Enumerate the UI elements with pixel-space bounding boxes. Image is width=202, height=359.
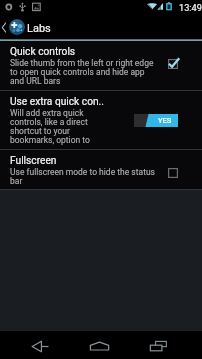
button[interactable]: Quick controls [0, 41, 202, 90]
button[interactable]: Unchecked [164, 165, 182, 181]
button[interactable]: Fullscreen [0, 150, 202, 189]
staticText: Use fullscreen mode to hide the status b… [10, 167, 160, 187]
button[interactable]: Home [70, 331, 128, 359]
staticText: Use extra quick con.. [10, 96, 104, 108]
button[interactable]: Back [11, 331, 69, 359]
staticText: Quick controls [10, 46, 76, 58]
staticText: Slide thumb from the left or right edge … [10, 58, 160, 87]
button[interactable]: Recent apps [129, 331, 187, 359]
button[interactable]: Navigate up [0, 14, 27, 41]
staticText: Labs [27, 22, 51, 35]
button[interactable]: Use extra quick controls, on [134, 110, 178, 130]
button[interactable]: Use extra quick con.. [0, 91, 202, 149]
staticText: Fullscreen [10, 155, 57, 167]
staticText: 13:49 [179, 2, 202, 13]
button[interactable]: Checked [164, 56, 182, 72]
staticText: Will add extra quick controls, like a di… [10, 108, 96, 146]
staticText: YES [158, 116, 172, 125]
